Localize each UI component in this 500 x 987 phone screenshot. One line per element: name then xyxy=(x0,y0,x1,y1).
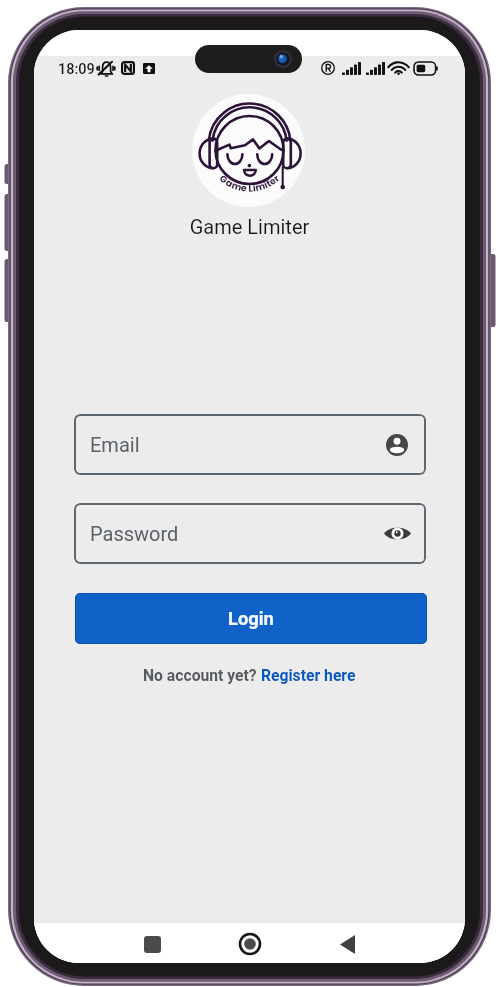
button[interactable]: Home xyxy=(227,925,273,963)
button[interactable]: Register here xyxy=(261,666,356,684)
staticText: No account yet? xyxy=(143,666,261,684)
button[interactable]: Login xyxy=(75,593,427,644)
staticText: Password xyxy=(90,522,179,545)
staticText: Login xyxy=(228,608,274,629)
staticText: 18:09 xyxy=(58,61,95,78)
staticText: Register here xyxy=(261,666,356,684)
button[interactable]: Password xyxy=(74,503,426,564)
button[interactable]: Back xyxy=(324,925,370,963)
button[interactable]: Recent apps xyxy=(129,925,176,963)
button[interactable]: Email xyxy=(74,414,426,475)
staticText: Game Limiter xyxy=(34,215,465,238)
staticText: Email xyxy=(90,433,140,456)
